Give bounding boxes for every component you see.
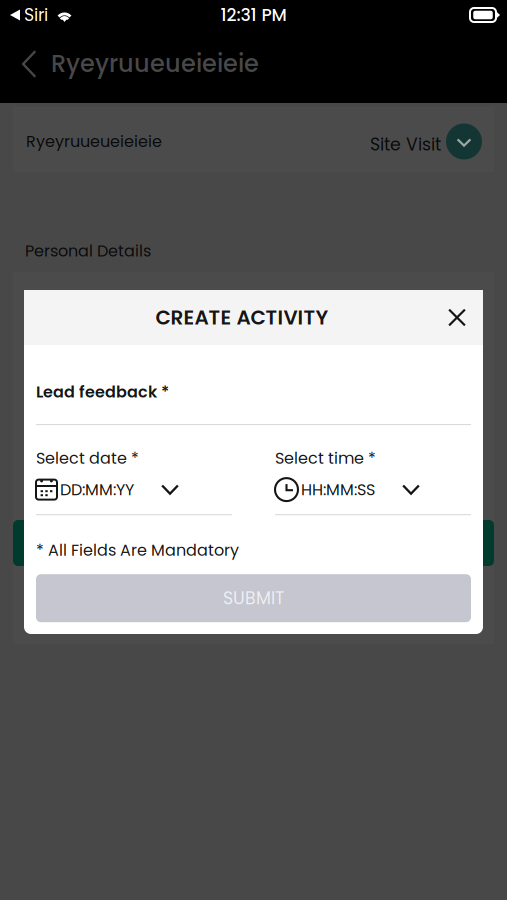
staticText: Site Visit [370, 132, 441, 157]
button[interactable]: HH:MM:SS [275, 478, 471, 501]
button[interactable]: SUBMIT [36, 574, 471, 622]
staticText: * All Fields Are Mandatory [36, 539, 239, 561]
button[interactable]: Back [9, 37, 49, 91]
staticText: Lead feedback * [36, 381, 169, 403]
staticText: Siri [24, 3, 48, 27]
staticText: Ryeyruueueieieie [26, 130, 162, 153]
staticText: CREATE ACTIVITY [155, 303, 328, 331]
staticText: HH:MM:SS [301, 478, 375, 501]
staticText: DD:MM:YY [60, 478, 134, 501]
staticText: Personal Details [25, 240, 151, 262]
button[interactable]: Ryeyruueueieieie [13, 107, 494, 172]
button[interactable]: DD:MM:YY [36, 478, 232, 501]
button[interactable]: Close [436, 296, 478, 338]
staticText: Select time * [275, 447, 376, 469]
staticText: SUBMIT [223, 586, 284, 610]
staticText: Select date * [36, 447, 139, 469]
staticText: 12:31 PM [220, 3, 286, 27]
staticText: Ryeyruueueieieie [51, 47, 259, 80]
